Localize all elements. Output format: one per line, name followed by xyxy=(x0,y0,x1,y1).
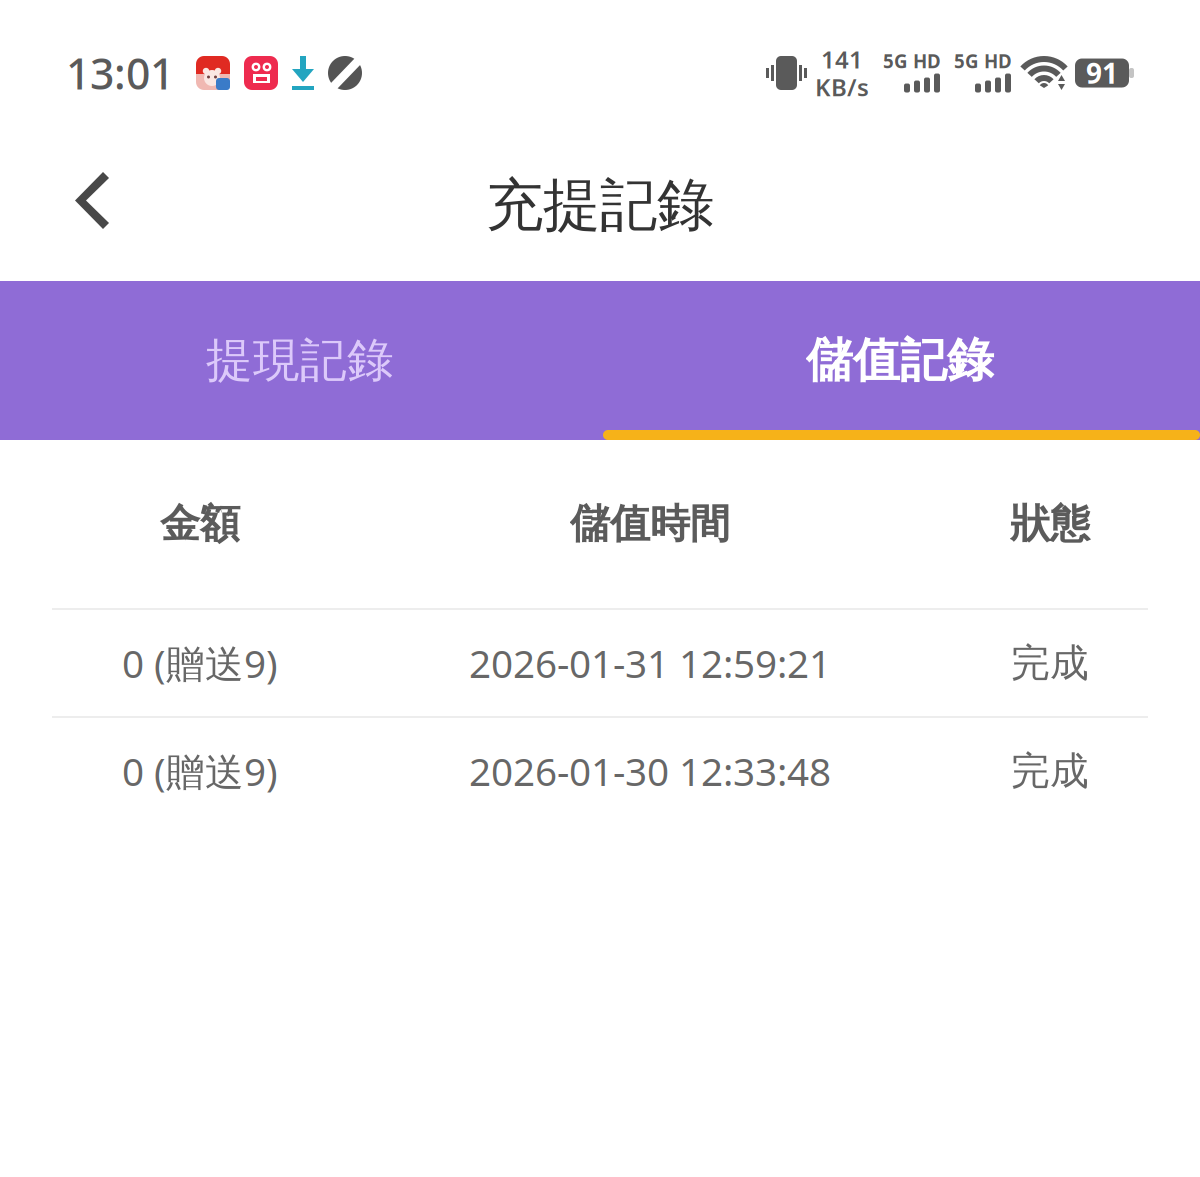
button[interactable]: 提現記錄 xyxy=(0,281,600,440)
staticText: 儲值時間 xyxy=(570,499,730,548)
staticText: 2026-01-31 12:59:21 xyxy=(469,637,831,689)
staticText: 2026-01-30 12:33:48 xyxy=(469,745,831,797)
staticText: 儲值記錄 xyxy=(806,332,994,389)
staticText: 13:01 xyxy=(66,45,174,101)
staticText: 提現記錄 xyxy=(206,332,394,389)
staticText: 狀態 xyxy=(1010,499,1090,548)
button[interactable]: 儲值記錄 xyxy=(600,281,1200,440)
staticText: 141 xyxy=(821,43,863,75)
staticText: 5G HD xyxy=(954,49,1012,73)
staticText: 充提記錄 xyxy=(486,170,714,241)
button[interactable]: Back xyxy=(0,156,149,255)
staticText: 0 (贈送9) xyxy=(122,745,278,797)
staticText: 金額 xyxy=(160,499,240,548)
staticText: KB/s xyxy=(815,71,869,103)
staticText: 91 xyxy=(1086,54,1118,92)
staticText: 5G HD xyxy=(883,49,941,73)
staticText: 完成 xyxy=(1011,747,1089,795)
staticText: 0 (贈送9) xyxy=(122,637,278,689)
staticText: 完成 xyxy=(1011,639,1089,687)
